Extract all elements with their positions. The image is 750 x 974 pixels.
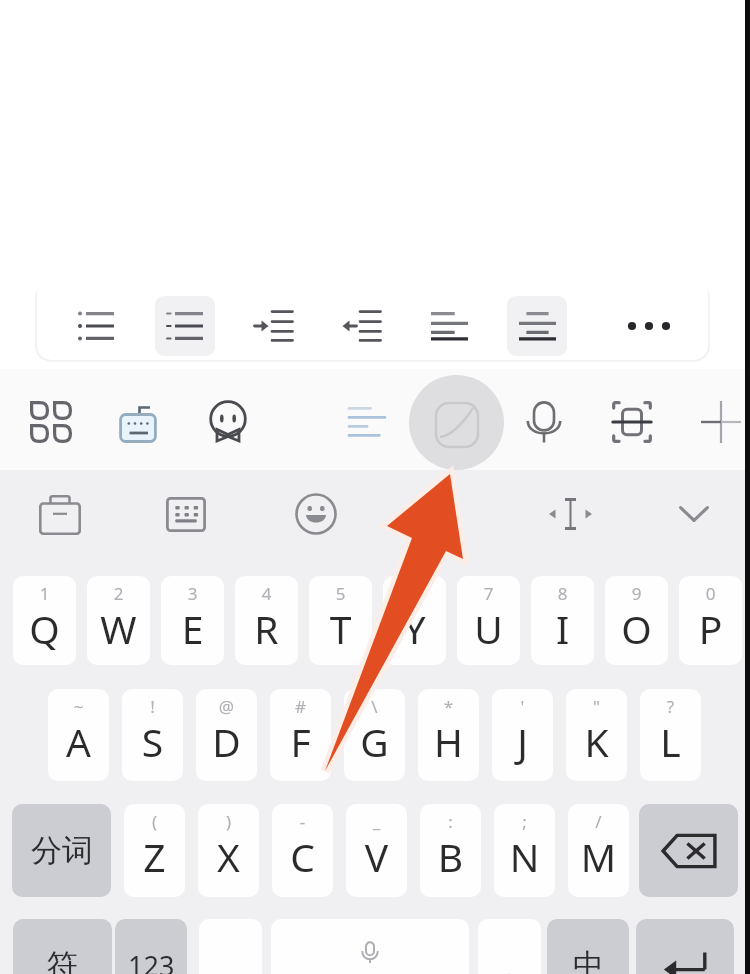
button[interactable]: ): [198, 804, 259, 897]
button[interactable]: 6: [383, 576, 446, 665]
staticText: M: [568, 830, 629, 883]
button[interactable]: /: [568, 804, 629, 897]
button[interactable]: #: [270, 689, 331, 781]
button[interactable]: toolbar icon: [150, 478, 222, 550]
staticText: X: [198, 830, 259, 883]
button[interactable]: 3: [161, 576, 224, 665]
button[interactable]: keyboard tool: [98, 383, 178, 463]
button[interactable]: format option: [620, 296, 680, 356]
staticText: 2: [87, 582, 150, 605]
button[interactable]: keyboard tool: [327, 382, 407, 462]
staticText: 3: [161, 582, 224, 605]
button[interactable]: 中: [547, 919, 629, 974]
button[interactable]: _: [346, 804, 407, 897]
staticText: P: [679, 602, 742, 655]
button[interactable]: @: [196, 689, 257, 781]
button[interactable]: \: [344, 689, 405, 781]
button[interactable]: -: [272, 804, 333, 897]
staticText: J: [492, 715, 553, 768]
staticText: ): [198, 810, 259, 833]
button[interactable]: :: [420, 804, 481, 897]
button[interactable]: format option: [243, 296, 303, 356]
button[interactable]: keyboard tool: [504, 382, 584, 462]
staticText: 7: [457, 582, 520, 605]
staticText: H: [418, 715, 479, 768]
staticText: @: [196, 695, 257, 718]
staticText: 6: [383, 582, 446, 605]
button[interactable]: ': [492, 689, 553, 781]
button[interactable]: 符: [13, 919, 112, 974]
staticText: (: [124, 810, 185, 833]
staticText: K: [566, 715, 627, 768]
button[interactable]: 4: [235, 576, 298, 665]
staticText: ?: [640, 695, 701, 718]
staticText: \: [344, 695, 405, 718]
staticText: #: [270, 695, 331, 718]
staticText: B: [420, 830, 481, 883]
button[interactable]: format option: [331, 296, 391, 356]
staticText: 分词: [31, 831, 93, 870]
button[interactable]: toolbar icon: [658, 478, 730, 550]
button[interactable]: 7: [457, 576, 520, 665]
staticText: Q: [13, 602, 76, 655]
staticText: A: [48, 715, 109, 768]
staticText: 中: [573, 946, 604, 974]
button[interactable]: 9: [605, 576, 668, 665]
staticText: N: [494, 830, 555, 883]
button[interactable]: 分词: [12, 804, 111, 897]
staticText: S: [122, 715, 183, 768]
button[interactable]: keyboard tool: [11, 382, 91, 462]
button[interactable]: !: [122, 689, 183, 781]
button[interactable]: ;: [494, 804, 555, 897]
button[interactable]: *: [418, 689, 479, 781]
button[interactable]: format option: [507, 296, 567, 356]
staticText: ~: [48, 695, 109, 718]
button[interactable]: format option: [66, 296, 126, 356]
button[interactable]: Backspace: [639, 804, 738, 897]
staticText: 符: [47, 946, 78, 974]
button[interactable]: Enter: [636, 919, 734, 974]
staticText: /: [568, 810, 629, 833]
button[interactable]: ?: [640, 689, 701, 781]
staticText: C: [272, 830, 333, 883]
button[interactable]: keyboard tool: [417, 385, 497, 465]
button[interactable]: toolbar icon: [534, 478, 606, 550]
staticText: :: [420, 810, 481, 833]
button[interactable]: 8: [531, 576, 594, 665]
staticText: 4: [235, 582, 298, 605]
button[interactable]: ": [566, 689, 627, 781]
button[interactable]: format option: [419, 296, 479, 356]
button[interactable]: 5: [309, 576, 372, 665]
button[interactable]: ~: [48, 689, 109, 781]
button[interactable]: 123: [115, 919, 187, 974]
staticText: I: [531, 602, 594, 655]
button[interactable]: Space: [271, 919, 469, 974]
button[interactable]: 2: [87, 576, 150, 665]
button[interactable]: 1: [13, 576, 76, 665]
staticText: 5: [309, 582, 372, 605]
staticText: 8: [531, 582, 594, 605]
staticText: T: [309, 602, 372, 655]
button[interactable]: 0: [679, 576, 742, 665]
staticText: ": [566, 695, 627, 718]
button[interactable]: keyboard tool: [188, 381, 268, 461]
staticText: 1: [13, 582, 76, 605]
staticText: O: [605, 602, 668, 655]
button[interactable]: format option: [155, 296, 215, 356]
staticText: ;: [494, 810, 555, 833]
staticText: F: [270, 715, 331, 768]
staticText: Z: [124, 830, 185, 883]
button[interactable]: (: [124, 804, 185, 897]
button[interactable]: toolbar icon: [24, 479, 96, 551]
button[interactable]: keyboard tool: [592, 382, 672, 462]
button[interactable]: toolbar icon: [280, 478, 352, 550]
staticText: *: [418, 695, 479, 718]
staticText: L: [640, 715, 701, 768]
staticText: !: [122, 695, 183, 718]
staticText: D: [196, 715, 257, 768]
button[interactable]: keyboard tool: [681, 382, 750, 462]
